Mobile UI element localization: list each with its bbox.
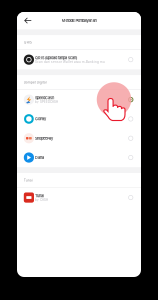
staticText: by SPEEDCASH bbox=[35, 100, 58, 104]
staticText: Scan dari sensor Wallet atau m-Banking m… bbox=[35, 60, 105, 64]
staticText: GoPay bbox=[35, 117, 46, 121]
button[interactable]: SpeedCash bbox=[17, 90, 141, 109]
staticText: QRIS bbox=[24, 40, 32, 44]
staticText: Dompet Digital bbox=[24, 80, 47, 84]
staticText: Metode Pembayaran bbox=[61, 18, 96, 23]
button[interactable]: ShopeePay bbox=[17, 129, 141, 148]
staticText: Tunai bbox=[24, 178, 33, 182]
button[interactable]: Dana bbox=[17, 148, 141, 167]
staticText: by CASH bbox=[35, 198, 48, 202]
staticText: SpeedCash bbox=[35, 96, 54, 100]
staticText: Tunai bbox=[35, 193, 44, 198]
button[interactable]: GoPay bbox=[17, 109, 141, 129]
button[interactable]: Tunai bbox=[17, 188, 141, 207]
button[interactable]: QRIS (upload tanpa scan) bbox=[17, 50, 141, 69]
staticText: QRIS (upload tanpa scan) bbox=[35, 56, 77, 60]
staticText: ShopeePay bbox=[35, 136, 53, 141]
button[interactable]: Back bbox=[21, 12, 34, 29]
staticText: Dana bbox=[35, 155, 44, 160]
